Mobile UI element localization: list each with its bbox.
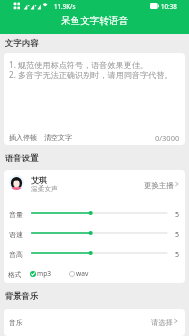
- staticText: 5: [175, 230, 180, 240]
- staticText: 清空文字: [44, 133, 72, 142]
- staticText: 艾琪: [31, 175, 47, 185]
- staticText: 请选择: [151, 318, 173, 327]
- staticText: 背景音乐: [5, 291, 39, 301]
- button[interactable]: wav: [69, 269, 89, 278]
- staticText: 语音设置: [5, 153, 39, 163]
- staticText: 音量: [9, 210, 23, 219]
- button[interactable]: 艾琪: [4, 170, 185, 195]
- staticText: mp3: [37, 269, 51, 278]
- button[interactable]: 清空文字: [43, 132, 73, 143]
- staticText: 5: [175, 250, 180, 260]
- button[interactable]: mp3: [30, 269, 51, 278]
- staticText: 音乐: [9, 318, 23, 327]
- button[interactable]: 语速: [4, 228, 185, 238]
- button[interactable]: 音量: [4, 208, 185, 218]
- staticText: 2. 多音字无法正确识别时，请用同音字代替。: [9, 69, 173, 80]
- button[interactable]: 音高: [4, 248, 185, 258]
- button[interactable]: 插入停顿: [8, 132, 38, 143]
- staticText: 温柔女声: [31, 185, 58, 193]
- staticText: 10:38: [161, 2, 177, 10]
- button[interactable]: 音乐: [4, 309, 185, 336]
- staticText: 5: [175, 210, 180, 220]
- staticText: 音高: [9, 250, 23, 259]
- staticText: wav: [76, 269, 89, 278]
- staticText: 1. 规范使用标点符号，语音效果更佳。: [9, 59, 149, 70]
- staticText: 11.9K/s: [54, 2, 76, 10]
- staticText: 更换主播: [144, 181, 174, 190]
- staticText: 语速: [9, 230, 23, 239]
- staticText: 0/3000: [155, 133, 180, 143]
- staticText: 插入停顿: [9, 133, 37, 142]
- staticText: 呆鱼文字转语音: [61, 15, 129, 27]
- staticText: 文字内容: [5, 38, 39, 48]
- staticText: 格式: [8, 270, 22, 279]
